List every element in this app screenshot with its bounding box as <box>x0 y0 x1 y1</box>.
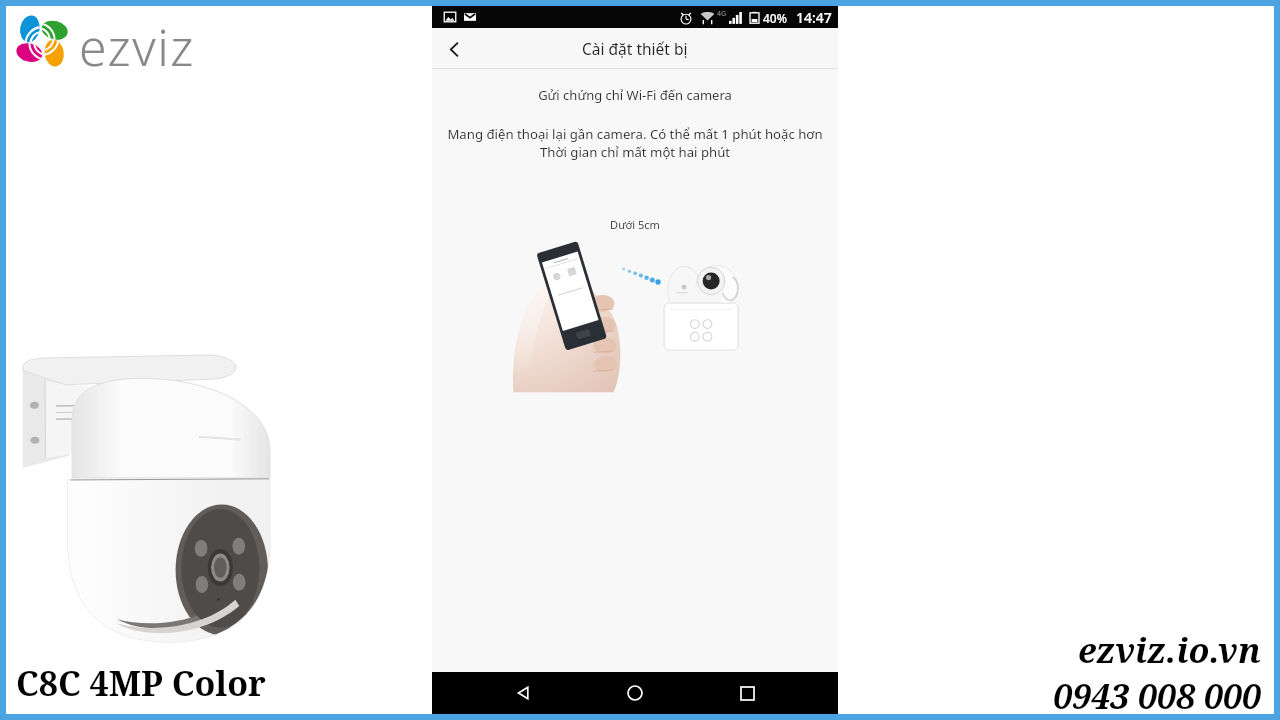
staticText: 4G <box>717 9 727 19</box>
staticText: Cài đặt thiết bị <box>582 38 688 59</box>
staticText: Mang điện thoại lại gần camera. Có thể m… <box>432 125 838 161</box>
button[interactable]: Home <box>614 672 656 714</box>
staticText: Dưới 5cm <box>432 217 838 232</box>
staticText: ezviz.io.vn <box>1078 627 1261 673</box>
button[interactable]: Back <box>436 31 472 67</box>
staticText: 14:47 <box>796 8 832 27</box>
staticText: Gửi chứng chỉ Wi-Fi đến camera <box>432 86 838 104</box>
staticText: 0943 008 000 <box>1053 673 1261 719</box>
staticText: ezviz <box>79 13 195 81</box>
staticText: C8C 4MP Color <box>16 660 266 706</box>
staticText: 40% <box>763 10 787 26</box>
button[interactable]: Recent apps <box>726 672 768 714</box>
button[interactable]: Back <box>502 672 544 714</box>
